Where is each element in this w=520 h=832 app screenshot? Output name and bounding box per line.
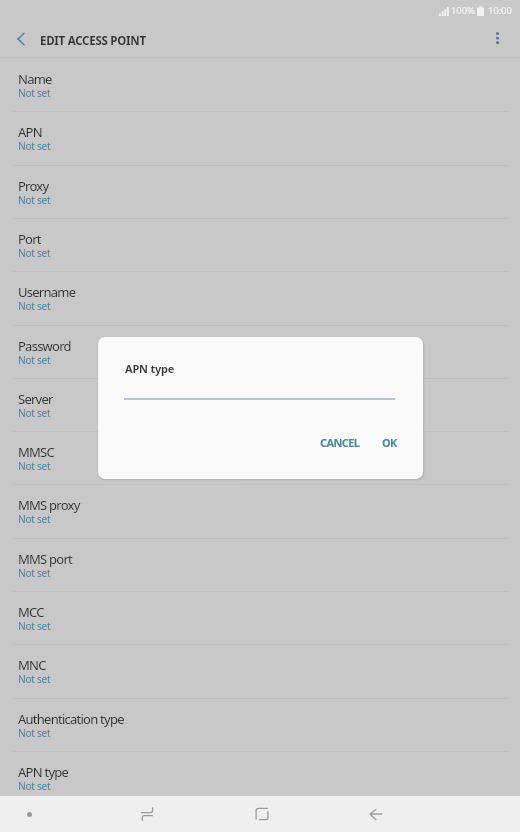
staticText: Proxy xyxy=(18,177,49,195)
staticText: Authentication type xyxy=(18,710,124,728)
staticText: MCC xyxy=(18,603,44,621)
staticText: Port xyxy=(18,230,41,248)
staticText: Not set xyxy=(18,139,51,153)
button[interactable]: Username xyxy=(0,271,520,324)
button[interactable]: Name xyxy=(0,58,520,111)
button[interactable]: MMS proxy xyxy=(0,484,520,537)
button[interactable]: MCC xyxy=(0,591,520,644)
staticText: Not set xyxy=(18,353,51,367)
button[interactable]: Authentication type xyxy=(0,698,520,751)
button[interactable]: CANCEL xyxy=(308,428,372,456)
staticText: MMSC xyxy=(18,443,54,461)
button[interactable]: Back xyxy=(358,796,394,832)
staticText: MMS proxy xyxy=(18,496,80,514)
staticText: Username xyxy=(18,283,76,301)
staticText: Not set xyxy=(18,726,51,740)
staticText: Not set xyxy=(18,299,51,313)
staticText: Password xyxy=(18,337,71,355)
staticText: Name xyxy=(18,70,52,88)
staticText: Server xyxy=(18,390,53,408)
button[interactable]: Home xyxy=(244,796,280,832)
button[interactable]: More options xyxy=(478,19,516,57)
button[interactable]: Proxy xyxy=(0,165,520,218)
button[interactable]: OK xyxy=(370,428,409,456)
button[interactable]: Port xyxy=(0,218,520,271)
staticText: OK xyxy=(382,435,397,450)
staticText: APN type xyxy=(18,763,69,781)
button[interactable]: MNC xyxy=(0,644,520,697)
button[interactable]: APN type xyxy=(0,751,520,804)
button[interactable]: Server xyxy=(0,378,520,431)
staticText: APN type xyxy=(125,361,175,376)
button[interactable]: Password xyxy=(0,325,520,378)
staticText: Not set xyxy=(18,459,51,473)
staticText: Not set xyxy=(18,779,51,793)
staticText: Not set xyxy=(18,246,51,260)
staticText: Not set xyxy=(18,86,51,100)
button[interactable]: MMS port xyxy=(0,538,520,591)
staticText: EDIT ACCESS POINT xyxy=(40,33,146,49)
staticText: Not set xyxy=(18,619,51,633)
staticText: APN xyxy=(18,123,42,141)
staticText: Not set xyxy=(18,406,51,420)
staticText: 10:00 xyxy=(488,4,512,17)
staticText: MNC xyxy=(18,656,46,674)
button[interactable]: Hide navigation bar xyxy=(11,796,47,832)
button[interactable]: Recent apps xyxy=(129,796,165,832)
staticText: 100% xyxy=(451,4,475,17)
staticText: CANCEL xyxy=(320,435,360,450)
button[interactable]: APN xyxy=(0,111,520,164)
button[interactable]: Navigate up xyxy=(2,20,40,58)
staticText: MMS port xyxy=(18,550,73,568)
staticText: Not set xyxy=(18,672,51,686)
staticText: Not set xyxy=(18,512,51,526)
staticText: Not set xyxy=(18,566,51,580)
staticText: Not set xyxy=(18,193,51,207)
button[interactable]: MMSC xyxy=(0,431,520,484)
